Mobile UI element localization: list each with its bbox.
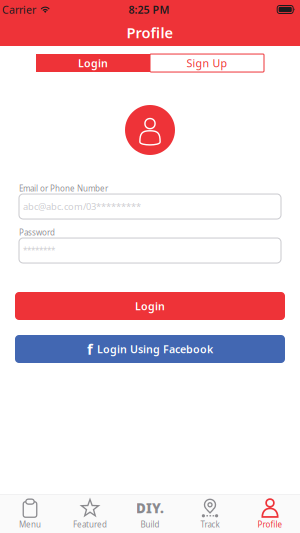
staticText: ******** bbox=[23, 245, 55, 256]
button[interactable]: f bbox=[15, 335, 285, 363]
staticText: Login Using Facebook bbox=[97, 342, 213, 356]
staticText: f bbox=[87, 339, 93, 359]
staticText: Sign Up bbox=[186, 56, 227, 70]
staticText: Email or Phone Number bbox=[19, 183, 108, 194]
button[interactable]: Menu bbox=[0, 493, 60, 533]
button[interactable]: Sign Up bbox=[150, 54, 264, 72]
button[interactable]: Login bbox=[36, 54, 150, 72]
staticText: Login bbox=[78, 56, 108, 70]
button[interactable]: Track bbox=[180, 493, 240, 533]
button[interactable]: Login bbox=[15, 292, 285, 320]
staticText: abc@abc.com/03********* bbox=[23, 200, 141, 213]
staticText: Profile bbox=[257, 519, 282, 530]
staticText: Carrier bbox=[2, 2, 36, 17]
staticText: Login bbox=[135, 299, 165, 313]
staticText: Menu bbox=[19, 519, 41, 530]
button[interactable]: DIY. bbox=[120, 493, 180, 533]
staticText: Build bbox=[140, 519, 159, 530]
staticText: Track bbox=[200, 519, 219, 530]
button[interactable]: Featured bbox=[60, 493, 120, 533]
staticText: DIY. bbox=[136, 499, 164, 517]
staticText: Password bbox=[19, 227, 55, 238]
staticText: 8:25 PM bbox=[128, 2, 169, 17]
button[interactable]: Profile bbox=[240, 493, 300, 533]
staticText: Featured bbox=[73, 519, 107, 530]
staticText: Profile bbox=[126, 23, 173, 42]
